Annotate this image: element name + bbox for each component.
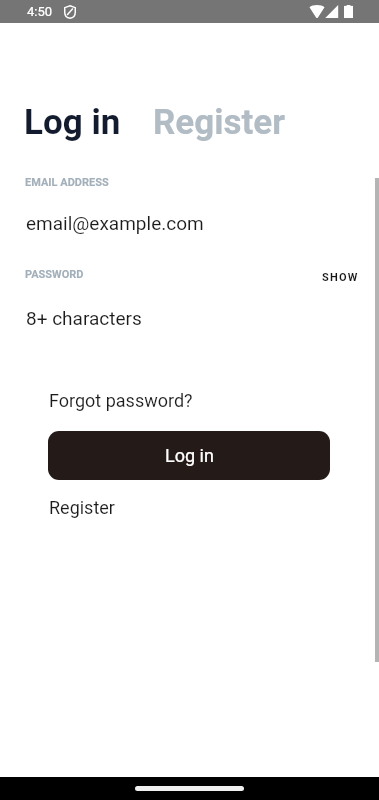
button[interactable]: Register xyxy=(39,490,125,524)
staticText: SHOW xyxy=(322,271,359,284)
other: Battery xyxy=(344,5,353,18)
staticText: Log in xyxy=(24,102,121,143)
button[interactable]: Home xyxy=(135,786,244,791)
staticText: Forgot password? xyxy=(49,390,193,411)
button[interactable]: EMAIL ADDRESS xyxy=(0,168,379,244)
button[interactable]: PASSWORD xyxy=(0,260,379,336)
staticText: Register xyxy=(49,497,115,518)
staticText: PASSWORD xyxy=(25,268,84,281)
button[interactable]: SHOW xyxy=(311,259,368,293)
staticText: EMAIL ADDRESS xyxy=(25,176,109,189)
other: Wi-Fi xyxy=(309,4,325,18)
staticText: email@example.com xyxy=(26,212,204,234)
other: VPN active xyxy=(64,5,76,19)
staticText: 8+ characters xyxy=(26,307,142,329)
staticText: 4:50 xyxy=(27,4,53,19)
button[interactable]: Register xyxy=(143,98,296,146)
button[interactable]: Forgot password? xyxy=(39,383,203,417)
staticText: Register xyxy=(153,102,286,143)
button[interactable]: Log in xyxy=(48,431,330,480)
button[interactable]: Log in xyxy=(14,98,131,146)
other: Mobile signal xyxy=(325,5,339,18)
staticText: Log in xyxy=(165,445,214,466)
